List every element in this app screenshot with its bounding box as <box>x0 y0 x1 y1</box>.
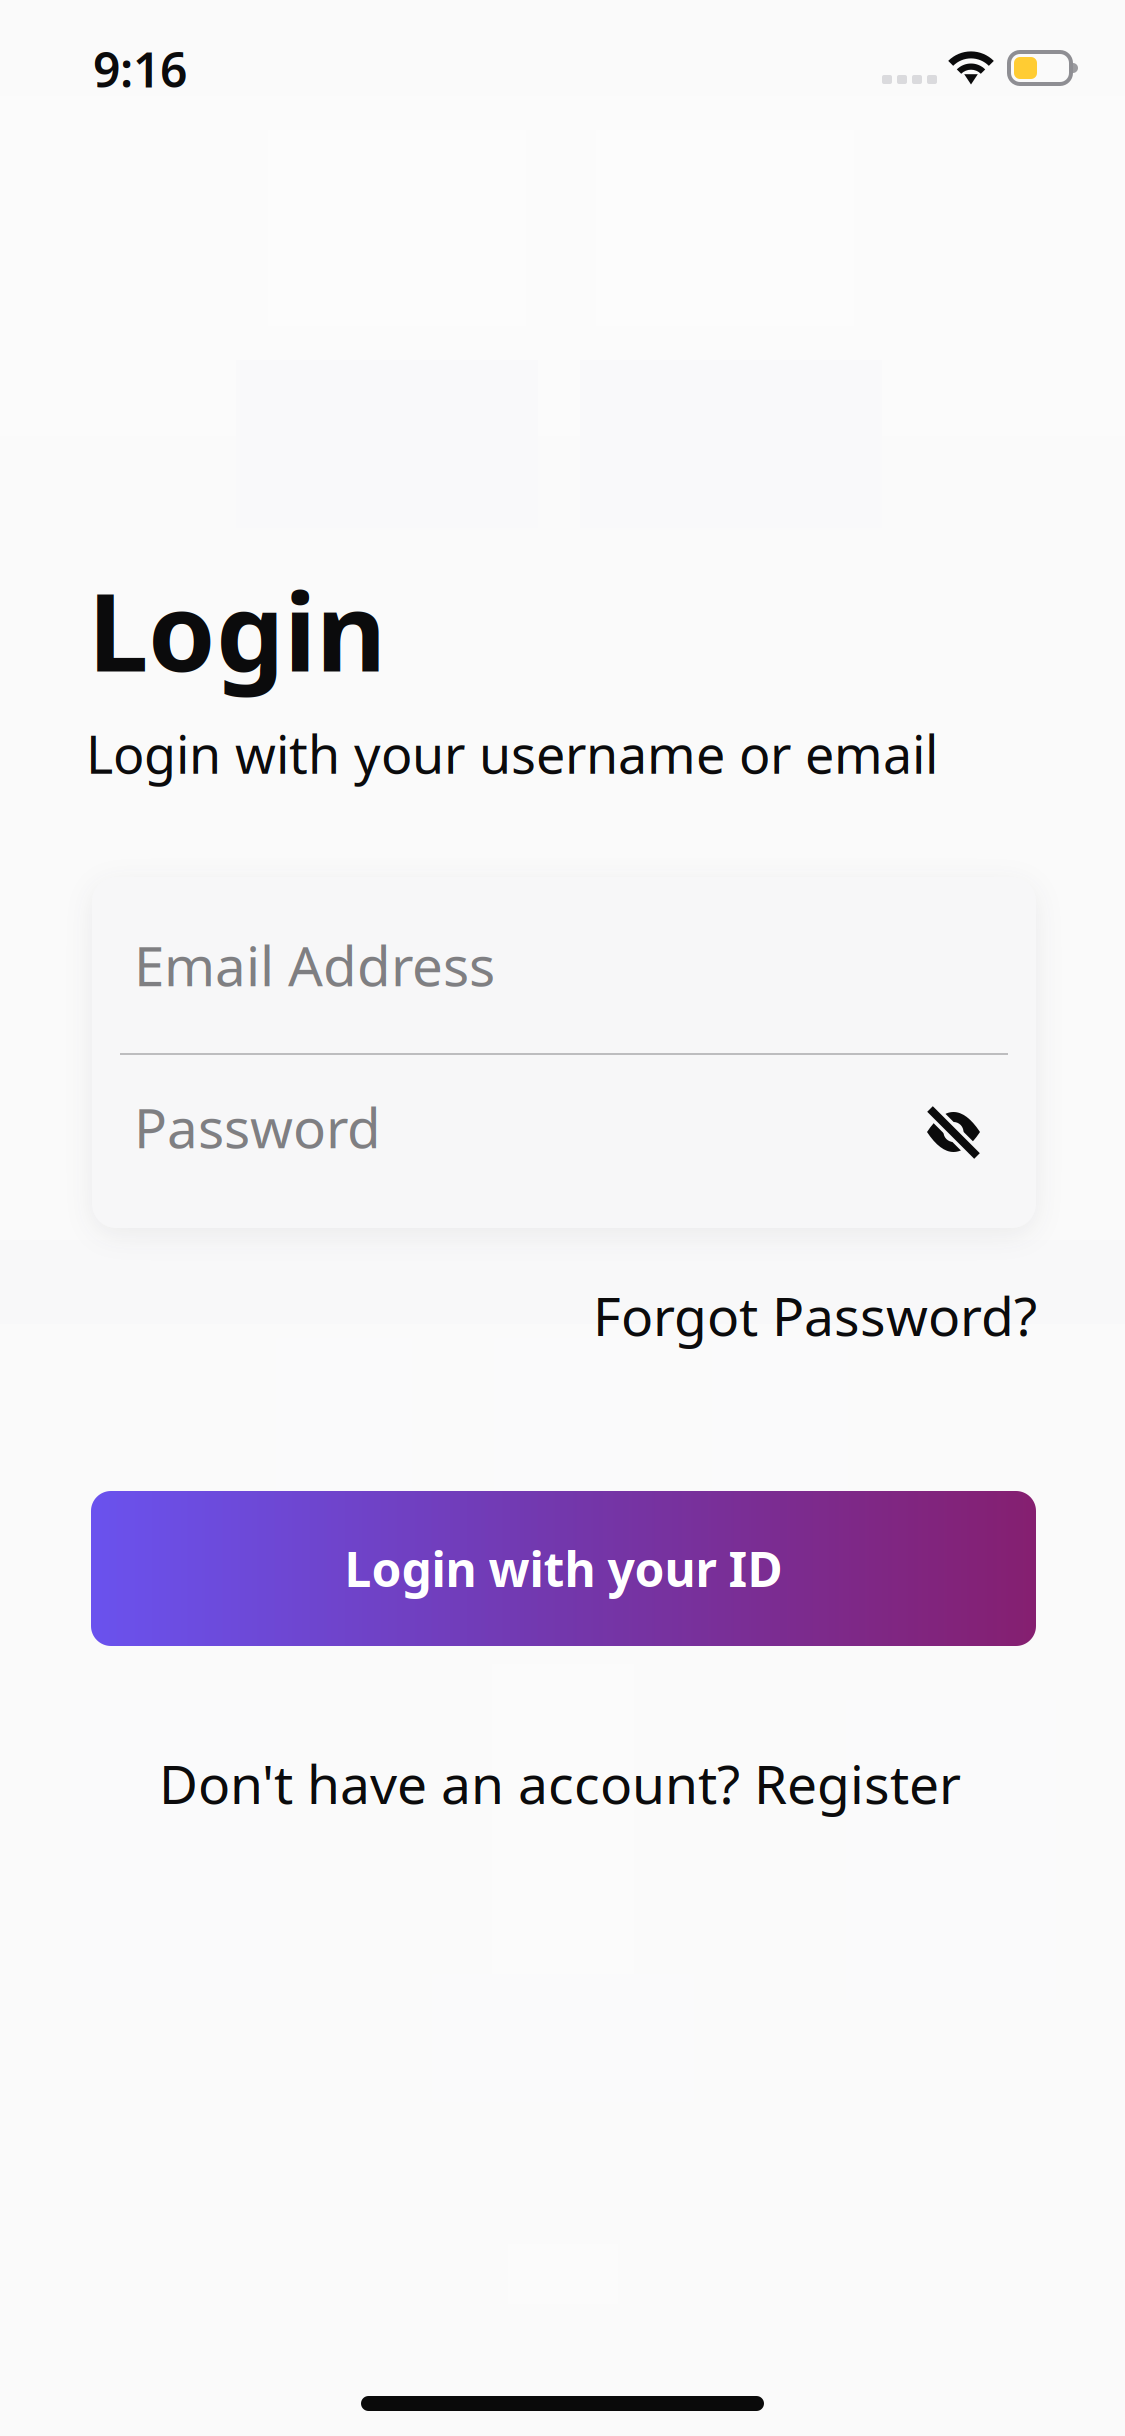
staticText: Forgot Password? <box>593 1280 1037 1351</box>
staticText: Don't have an account? Register <box>159 1748 961 1819</box>
staticText: 9:16 <box>93 37 187 101</box>
staticText: Email Address <box>134 929 495 1001</box>
button[interactable]: Forgot Password? <box>593 1280 1037 1351</box>
button[interactable]: Email Address <box>134 877 994 1053</box>
button[interactable]: Login with your ID <box>91 1491 1036 1646</box>
button[interactable]: Show password <box>913 1090 994 1164</box>
staticText: Password <box>134 1091 381 1163</box>
staticText: Login with your username or email <box>86 719 938 788</box>
button[interactable]: Don't have an account? Register <box>159 1748 961 1819</box>
staticText: Login <box>88 558 386 701</box>
button[interactable]: Password <box>134 1055 913 1199</box>
staticText: Login with your ID <box>344 1537 782 1600</box>
